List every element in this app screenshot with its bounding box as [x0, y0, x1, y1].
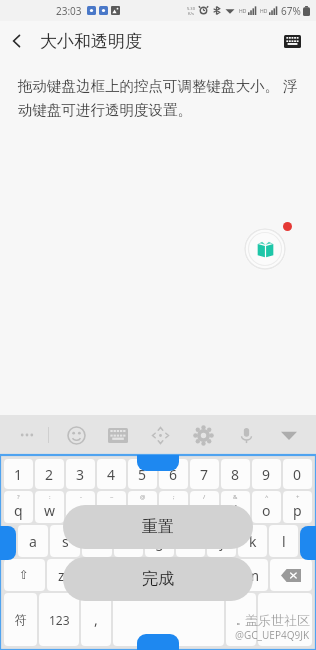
- staticText: d: [93, 532, 102, 551]
- button[interactable]: ;: [159, 491, 188, 523]
- button[interactable]: j: [207, 525, 236, 557]
- staticText: a: [29, 532, 37, 551]
- button[interactable]: 重置: [63, 505, 253, 549]
- staticText: 盖乐世社区: [245, 612, 310, 628]
- staticText: 4: [107, 465, 116, 484]
- button[interactable]: k: [238, 525, 267, 557]
- button[interactable]: Resize bottom: [137, 634, 179, 650]
- button[interactable]: 3: [66, 459, 95, 489]
- staticText: 5.30: [187, 6, 195, 11]
- button[interactable]: Backspace: [270, 559, 312, 591]
- staticText: v: [153, 566, 161, 585]
- staticText: ;: [173, 493, 175, 501]
- button[interactable]: [113, 593, 224, 646]
- button[interactable]: v: [142, 559, 172, 591]
- button[interactable]: m: [238, 559, 268, 591]
- button[interactable]: 6: [159, 459, 188, 489]
- staticText: &: [233, 493, 238, 501]
- button[interactable]: 4: [97, 459, 126, 489]
- button[interactable]: 。: [226, 593, 256, 646]
- staticText: f: [126, 532, 131, 551]
- button[interactable]: 0: [283, 459, 312, 489]
- button[interactable]: a: [18, 525, 48, 557]
- staticText: t: [140, 501, 146, 520]
- button[interactable]: Back: [0, 24, 34, 58]
- button[interactable]: ~: [97, 491, 126, 523]
- staticText: o: [262, 501, 271, 520]
- button[interactable]: Move keyboard: [145, 420, 175, 450]
- button[interactable]: 完成: [63, 557, 253, 601]
- staticText: 完成: [142, 569, 174, 589]
- button[interactable]: /: [190, 491, 219, 523]
- staticText: HD: [260, 8, 268, 15]
- button[interactable]: ⇧: [4, 559, 45, 591]
- button[interactable]: 5: [128, 459, 157, 489]
- staticText: 。: [236, 613, 247, 627]
- button[interactable]: Resize top: [137, 455, 179, 471]
- button[interactable]: 2: [35, 459, 64, 489]
- button[interactable]: -: [66, 491, 95, 523]
- staticText: :: [49, 493, 51, 501]
- button[interactable]: ?: [4, 491, 33, 523]
- staticText: 23:03: [56, 4, 82, 18]
- button[interactable]: g: [145, 525, 174, 557]
- button[interactable]: Voice input: [231, 420, 261, 450]
- staticText: 7: [200, 465, 209, 484]
- button[interactable]: 7: [190, 459, 219, 489]
- button[interactable]: ,: [81, 593, 111, 646]
- staticText: i: [234, 501, 238, 520]
- staticText: 3: [76, 465, 85, 484]
- button[interactable]: Keyboard: [274, 23, 310, 59]
- staticText: e: [77, 501, 85, 520]
- button[interactable]: Settings: [188, 420, 218, 450]
- button[interactable]: 8: [221, 459, 250, 489]
- staticText: @GC_UEP4Q9JK: [235, 628, 310, 642]
- staticText: j: [220, 532, 224, 551]
- staticText: g: [155, 532, 164, 551]
- button[interactable]: More: [14, 422, 40, 448]
- staticText: 67%: [281, 4, 301, 18]
- staticText: s: [62, 532, 69, 551]
- button[interactable]: 符: [4, 593, 37, 646]
- button[interactable]: Community: [244, 228, 286, 270]
- staticText: 6: [169, 465, 178, 484]
- staticText: +: [296, 493, 300, 501]
- staticText: 符: [15, 612, 27, 627]
- button[interactable]: Emoji: [61, 420, 91, 450]
- button[interactable]: Hide keyboard: [274, 420, 304, 450]
- button[interactable]: 9: [252, 459, 281, 489]
- staticText: 0: [293, 465, 302, 484]
- staticText: ⇧: [19, 568, 30, 582]
- button[interactable]: l: [269, 525, 298, 557]
- button[interactable]: z: [47, 559, 76, 591]
- button[interactable]: 123: [39, 593, 79, 646]
- button[interactable]: f: [114, 525, 143, 557]
- staticText: HD: [239, 8, 247, 15]
- button[interactable]: &: [221, 491, 250, 523]
- button[interactable]: Resize left: [0, 526, 16, 560]
- button[interactable]: [258, 593, 312, 646]
- button[interactable]: @: [128, 491, 157, 523]
- button[interactable]: h: [176, 525, 205, 557]
- button[interactable]: :: [35, 491, 64, 523]
- button[interactable]: Resize right: [300, 526, 316, 560]
- button[interactable]: s: [50, 525, 80, 557]
- staticText: -: [80, 493, 82, 501]
- button[interactable]: 1: [4, 459, 33, 489]
- staticText: 123: [49, 612, 70, 628]
- staticText: y: [170, 501, 178, 520]
- button[interactable]: ^: [252, 491, 281, 523]
- staticText: 5: [138, 465, 147, 484]
- button[interactable]: +: [283, 491, 312, 523]
- button[interactable]: d: [82, 525, 112, 557]
- staticText: ^: [265, 493, 269, 501]
- staticText: K/s: [188, 11, 194, 16]
- button[interactable]: Keyboard layout: [103, 420, 133, 450]
